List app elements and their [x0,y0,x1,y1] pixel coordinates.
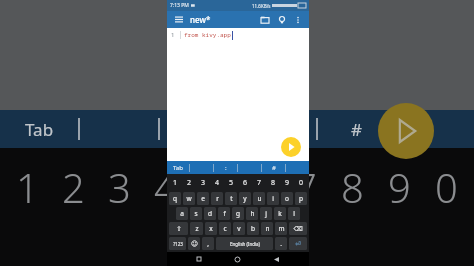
staticText: f [223,209,226,218]
button[interactable]: o [281,192,293,205]
button[interactable]: More options [292,14,304,26]
button[interactable]: d [204,207,216,220]
button[interactable]: b [247,222,259,235]
staticText: w [186,194,192,203]
button[interactable]: e [197,192,209,205]
button[interactable]: u [253,192,265,205]
button[interactable]: ⏎ [289,237,307,250]
staticText: 2 [62,160,85,214]
button[interactable]: r [211,192,223,205]
button[interactable]: v [233,222,245,235]
staticText: q [173,194,177,203]
button[interactable]: , [202,237,214,250]
staticText: 8 [271,178,276,188]
staticText: 0 [299,178,304,188]
staticText: # [351,118,362,141]
button[interactable]: 8 [266,175,280,191]
staticText: 7:13 PM [170,2,189,9]
button[interactable]: Recents [193,253,205,265]
button[interactable]: Home [231,253,243,265]
staticText: g [236,209,240,218]
button[interactable]: f [218,207,230,220]
button[interactable]: h [246,207,258,220]
button[interactable]: . [275,237,287,250]
button[interactable]: j [260,207,272,220]
button[interactable]: 3 [196,175,210,191]
button[interactable]: q [169,192,181,205]
button[interactable]: n [261,222,273,235]
staticText: 3 [201,178,206,188]
staticText: h [250,209,255,218]
button[interactable]: m [275,222,287,235]
button[interactable]: 0 [294,175,308,191]
staticText: 4 [154,160,177,214]
staticText: 6 [243,178,248,188]
button[interactable]: ⇧ [169,222,188,235]
staticText: : [225,164,227,172]
staticText: ⏎ [295,240,301,248]
staticText: Tab [173,164,183,172]
button[interactable]: ☺ [188,237,200,250]
staticText: 7 [257,178,262,188]
button[interactable]: 9 [280,175,294,191]
staticText: ⇧ [176,225,182,233]
button[interactable]: 4 [210,175,224,191]
staticText: 1 [171,31,180,39]
button[interactable]: s [190,207,202,220]
button[interactable]: Menu [172,13,185,26]
staticText: b [251,224,255,233]
button[interactable]: z [190,222,203,235]
button[interactable]: 1 [168,175,182,191]
button[interactable]: t [225,192,237,205]
staticText: ⌫ [293,225,303,233]
button[interactable]: w [183,192,195,205]
staticText: j [265,209,267,218]
staticText: English (India) [230,241,260,247]
button[interactable]: English (India) [216,237,273,250]
button[interactable]: ?123 [169,237,186,250]
staticText: 4 [215,178,220,188]
button[interactable]: g [232,207,244,220]
staticText: 9 [388,160,411,214]
staticText: 7 [294,160,317,214]
staticText: r [216,194,219,203]
button[interactable]: ⌫ [289,222,307,235]
button[interactable]: 5 [224,175,238,191]
button[interactable]: Hint [275,13,289,27]
button[interactable]: Open folder [258,13,272,27]
button[interactable]: Run [281,137,301,157]
button[interactable]: y [239,192,251,205]
button[interactable]: i [267,192,279,205]
button[interactable]: x [205,222,217,235]
button[interactable]: a [176,207,188,220]
staticText: p [299,194,303,203]
button[interactable]: Back [270,253,282,265]
button[interactable]: 7 [252,175,266,191]
staticText: ☺ [191,240,198,248]
staticText: l [293,209,295,218]
staticText: c [223,224,227,233]
staticText: 1 [16,160,39,214]
staticText: 8 [341,160,364,214]
button[interactable]: p [295,192,307,205]
staticText: from kivy.app [184,31,231,39]
button[interactable]: 6 [238,175,252,191]
button[interactable]: : [214,161,237,174]
button[interactable]: c [219,222,231,235]
button[interactable]: l [288,207,300,220]
staticText: e [201,194,205,203]
button[interactable]: k [274,207,286,220]
staticText: ?123 [173,241,183,247]
staticText: 9 [285,178,290,188]
staticText: a [180,209,184,218]
button[interactable]: Play [378,103,434,159]
staticText: 3 [108,160,131,214]
staticText: new* [190,14,211,25]
button[interactable]: Tab [167,161,189,174]
button[interactable]: # [262,161,285,174]
button[interactable]: 2 [182,175,196,191]
